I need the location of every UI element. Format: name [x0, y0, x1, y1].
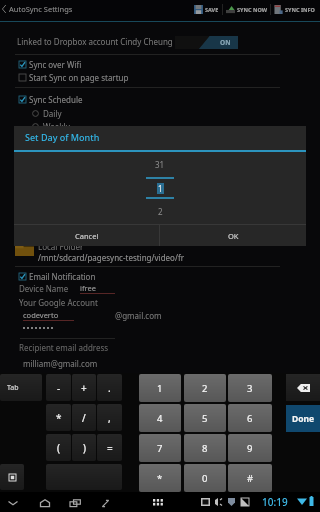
staticText: Your Google Account	[19, 297, 98, 308]
button[interactable]: *	[46, 404, 71, 431]
staticText: #	[247, 472, 254, 485]
staticText: /	[82, 411, 86, 425]
button[interactable]: (	[46, 434, 71, 461]
button[interactable]: 7	[139, 434, 181, 462]
button[interactable]: 6	[228, 404, 272, 432]
button[interactable]: Sync over Wifi	[19, 58, 82, 70]
button[interactable]: Backspace	[286, 374, 320, 401]
button[interactable]: 3	[228, 374, 272, 402]
button[interactable]: Home	[38, 496, 52, 510]
button[interactable]: 0	[184, 464, 226, 492]
button[interactable]: Start Sync on page startup	[19, 71, 129, 83]
button[interactable]: Expand	[98, 496, 112, 510]
staticText: codeverto	[23, 310, 59, 320]
button[interactable]: Email Notification	[19, 270, 96, 282]
staticText: +	[81, 381, 87, 395]
button[interactable]: =	[97, 434, 122, 461]
staticText: Done	[292, 413, 315, 425]
staticText: 31	[155, 159, 165, 170]
button[interactable]: Apps	[152, 496, 164, 508]
button[interactable]: /	[72, 404, 96, 431]
button[interactable]: ,	[97, 404, 122, 431]
button[interactable]: Recents	[68, 496, 82, 510]
staticText: AutoSync Settings	[9, 4, 73, 14]
button[interactable]: 5	[184, 404, 226, 432]
staticText: 1	[157, 382, 163, 395]
staticText: ifree	[80, 283, 96, 293]
button[interactable]: Daily	[32, 107, 62, 119]
staticText: Local Folder	[38, 241, 84, 252]
staticText: 1	[158, 183, 163, 194]
button[interactable]: Back	[6, 496, 20, 510]
staticText: 9	[247, 442, 253, 455]
button[interactable]: Sync Schedule	[19, 93, 83, 105]
staticText: 2	[202, 382, 208, 395]
staticText: milliam@gmail.com	[23, 358, 98, 369]
button[interactable]: codeverto	[23, 310, 74, 320]
button[interactable]: ifree	[80, 283, 115, 293]
button[interactable]: 2	[184, 374, 226, 402]
staticText: Cancel	[75, 231, 99, 241]
staticText: )	[83, 441, 86, 455]
staticText: 8	[202, 442, 208, 455]
staticText: 7	[157, 442, 163, 455]
button[interactable]: SYNC NOW	[223, 2, 270, 16]
staticText: 4	[157, 412, 163, 425]
staticText: =	[107, 441, 113, 455]
button[interactable]: *	[139, 464, 181, 492]
button[interactable]: .	[97, 374, 122, 401]
staticText: 10:19	[262, 495, 288, 509]
staticText: Set Day of Month	[25, 131, 100, 143]
staticText: Tab	[7, 383, 19, 393]
button[interactable]: SYNC INFO	[271, 2, 318, 16]
button[interactable]: 1	[139, 374, 181, 402]
button[interactable]: Dropbox link toggle On	[175, 36, 238, 49]
staticText: ON	[220, 38, 231, 47]
button[interactable]	[0, 464, 24, 490]
staticText: @gmail.com	[115, 310, 162, 321]
staticText: Sync Schedule	[29, 94, 83, 105]
button[interactable]: 1	[145, 182, 175, 194]
button[interactable]	[46, 464, 122, 490]
button[interactable]: -	[46, 374, 71, 401]
button[interactable]: Local folder	[15, 245, 34, 256]
staticText: SYNC INFO	[285, 6, 315, 13]
button[interactable]: Tab	[0, 374, 42, 401]
button[interactable]: Cancel	[14, 225, 159, 246]
button[interactable]: +	[72, 374, 96, 401]
staticText: Linked to Dropbox account Cindy Cheung	[17, 36, 173, 47]
staticText: (	[57, 441, 60, 455]
staticText: ,	[108, 411, 111, 425]
staticText: -	[57, 381, 61, 395]
staticText: /mnt/sdcard/pagesync-testing/video/fr	[38, 252, 184, 263]
button[interactable]: 8	[184, 434, 226, 462]
staticText: SYNC NOW	[237, 6, 267, 13]
staticText: Weekly	[43, 121, 70, 132]
button[interactable]: AutoSync Settings	[0, 1, 73, 17]
staticText: Recipient email address	[19, 342, 109, 353]
button[interactable]: 4	[139, 404, 181, 432]
staticText: 0	[202, 472, 208, 485]
staticText: 2	[158, 206, 163, 217]
button[interactable]: #	[228, 464, 272, 492]
staticText: 5	[202, 412, 208, 425]
staticText: Daily	[43, 108, 62, 119]
staticText: SAVE	[205, 6, 219, 13]
staticText: *	[56, 411, 62, 425]
staticText: *	[157, 472, 163, 485]
staticText: .	[108, 381, 111, 395]
button[interactable]: OK	[160, 225, 306, 246]
staticText: Start Sync on page startup	[29, 72, 129, 83]
staticText: Sync over Wifi	[29, 59, 82, 70]
staticText: 6	[247, 412, 253, 425]
button[interactable]: Weekly	[32, 120, 70, 132]
staticText: Device Name	[19, 283, 69, 294]
button[interactable]: 9	[228, 434, 272, 462]
button[interactable]: )	[72, 434, 96, 461]
button[interactable]: Done	[286, 405, 320, 432]
staticText: Email Notification	[29, 271, 96, 282]
staticText: OK	[228, 231, 239, 241]
staticText: 3	[247, 382, 253, 395]
button[interactable]: SAVE	[191, 2, 222, 16]
